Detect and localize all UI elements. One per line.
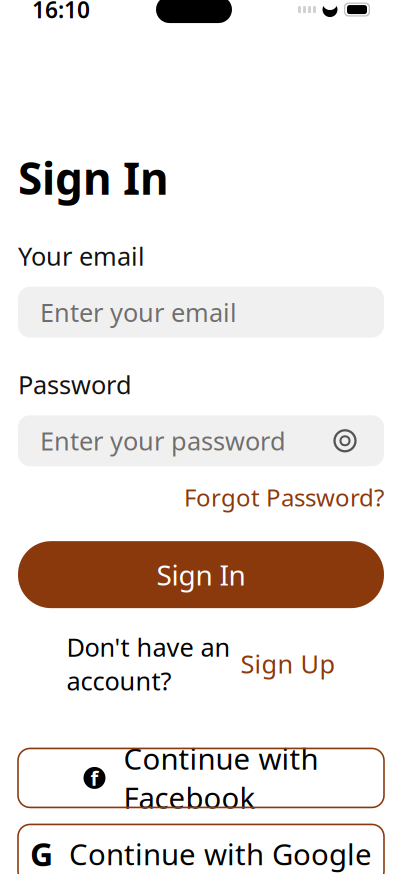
staticText: Continue with Facebook [123,739,318,817]
staticText: Enter your password [40,424,286,458]
staticText: Sign Up [240,647,335,681]
button[interactable]: Sign In [18,541,384,608]
button[interactable]: f [18,748,384,807]
button[interactable]: Show password [328,424,362,458]
staticText: Enter your email [40,295,237,329]
staticText: f [90,765,98,791]
button[interactable]: Sign Up [240,647,335,681]
button[interactable]: G [18,824,384,874]
staticText: Sign In [18,149,169,207]
staticText: Your email [18,239,145,273]
button[interactable]: Forgot Password? [184,481,384,513]
staticText: Forgot Password? [184,481,384,513]
staticText: Continue with Google [69,834,372,873]
staticText: G [30,833,53,874]
staticText: Don't have an account? [66,630,230,697]
staticText: Sign In [156,556,245,593]
staticText: Password [18,368,132,401]
staticText: 16:10 [32,0,90,25]
